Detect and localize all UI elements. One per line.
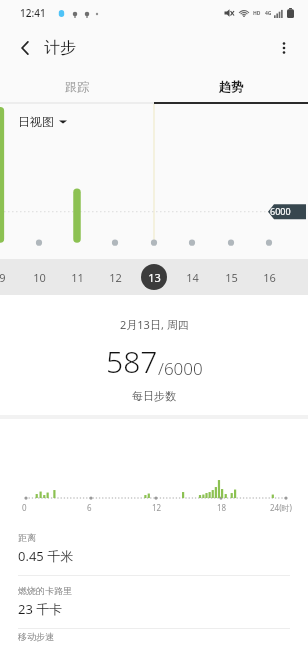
staticText: 9 (0, 270, 6, 285)
staticText: 6 (87, 502, 92, 513)
staticText: 587 (106, 341, 158, 382)
button[interactable]: 移动步速 (0, 629, 308, 650)
staticText: 15 (225, 270, 238, 285)
button[interactable]: 15 (218, 264, 244, 290)
staticText: 23 千卡 (18, 600, 63, 618)
staticText: 计步 (44, 38, 76, 58)
staticText: HD (253, 10, 261, 17)
staticText: 2月13日, 周四 (120, 317, 189, 332)
button[interactable]: 趋势 (154, 70, 308, 102)
staticText: 12:41 (20, 6, 46, 20)
button[interactable]: 16 (256, 264, 282, 290)
button[interactable]: More options (266, 30, 302, 66)
staticText: /6000 (158, 357, 203, 380)
button[interactable]: 11 (64, 264, 90, 290)
staticText: 跟踪 (65, 79, 89, 94)
button[interactable]: 12 (102, 264, 128, 290)
staticText: 24(时) (270, 502, 292, 513)
staticText: 每日步数 (132, 389, 176, 403)
staticText: 14 (186, 270, 199, 285)
staticText: 10 (33, 270, 46, 285)
staticText: 距离 (18, 532, 36, 543)
button[interactable]: Back (8, 30, 44, 66)
staticText: 12 (109, 270, 122, 285)
staticText: 4G (265, 10, 272, 17)
button[interactable]: 燃烧的卡路里 (0, 576, 308, 628)
button[interactable]: 10 (26, 264, 52, 290)
staticText: 13 (148, 270, 161, 285)
staticText: 12 (152, 502, 162, 513)
staticText: 燃烧的卡路里 (18, 585, 72, 596)
staticText: 16 (263, 270, 276, 285)
staticText: 0.45 千米 (18, 547, 74, 565)
staticText: 18 (217, 502, 227, 513)
button[interactable]: 9 (0, 264, 15, 290)
button[interactable]: 跟踪 (0, 70, 154, 102)
staticText: 移动步速 (18, 631, 54, 642)
staticText: 6000 (270, 205, 291, 217)
button[interactable]: 日视图 (18, 114, 67, 129)
staticText: 日视图 (18, 114, 54, 129)
button[interactable]: 14 (179, 264, 205, 290)
staticText: 趋势 (219, 79, 243, 94)
staticText: 0 (22, 502, 27, 513)
staticText: 11 (71, 270, 84, 285)
button[interactable]: 距离 (0, 523, 308, 575)
button[interactable]: 13 (141, 264, 167, 290)
